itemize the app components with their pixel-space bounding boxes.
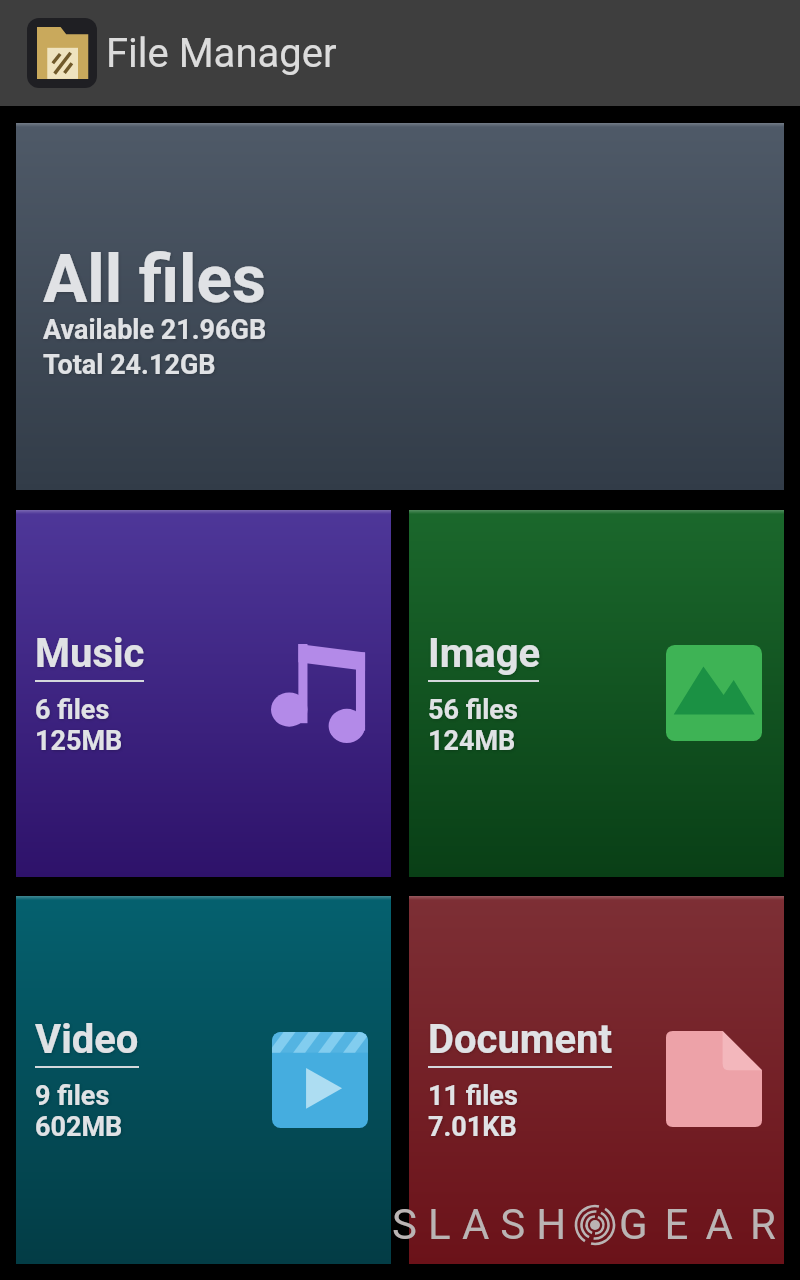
staticText: Document <box>428 1016 613 1063</box>
staticText: 56 files <box>428 694 518 726</box>
staticText: 125MB <box>35 725 123 757</box>
staticText: SLASH <box>392 1200 578 1249</box>
button[interactable]: Video <box>16 896 391 1264</box>
staticText: Available 21.96GB <box>43 314 267 346</box>
staticText: 9 files <box>35 1080 110 1112</box>
staticText: 6 files <box>35 694 110 726</box>
staticText: Video <box>35 1016 139 1063</box>
button[interactable]: Music <box>16 510 391 877</box>
button[interactable]: File Manager app icon <box>0 0 800 106</box>
staticText: 602MB <box>35 1111 123 1143</box>
staticText: 124MB <box>428 725 516 757</box>
other: File Manager app icon <box>27 18 97 88</box>
other: Music <box>271 644 367 743</box>
staticText: Image <box>428 630 541 677</box>
staticText: All files <box>43 241 266 318</box>
staticText: Total 24.12GB <box>43 349 216 381</box>
staticText: GEAR <box>619 1200 793 1249</box>
other: Image <box>666 645 762 741</box>
button[interactable]: Document <box>409 896 784 1264</box>
button[interactable]: All files <box>16 123 784 490</box>
other: Document <box>666 1031 762 1127</box>
staticText: 7.01KB <box>428 1111 517 1143</box>
button[interactable]: Image <box>409 510 784 877</box>
staticText: Music <box>35 630 145 677</box>
other: Video <box>272 1032 368 1128</box>
staticText: File Manager <box>106 30 337 77</box>
staticText: 11 files <box>428 1080 518 1112</box>
